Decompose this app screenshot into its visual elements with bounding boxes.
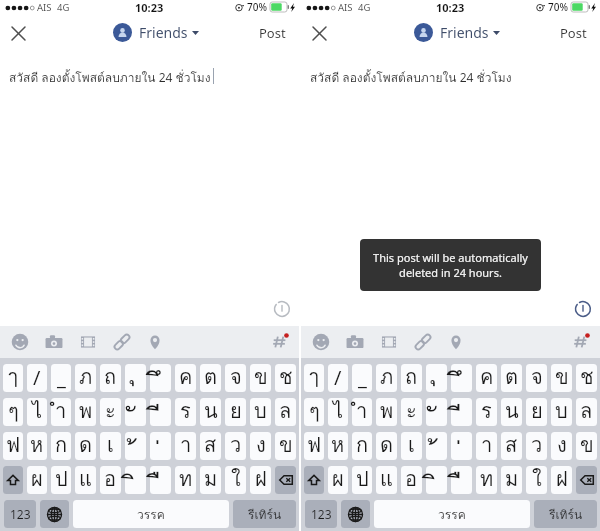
button[interactable]: [75, 364, 96, 392]
button[interactable]: [3, 364, 23, 392]
button[interactable]: [551, 466, 572, 494]
button[interactable]: [476, 466, 497, 494]
button[interactable]: [275, 398, 296, 426]
button[interactable]: [352, 364, 372, 392]
button[interactable]: [304, 364, 324, 392]
button[interactable]: [376, 398, 397, 426]
button[interactable]: [352, 466, 372, 494]
button[interactable]: [401, 466, 422, 494]
button[interactable]: [225, 432, 246, 460]
button[interactable]: Video: [380, 333, 398, 351]
button[interactable]: [200, 466, 221, 494]
button[interactable]: [3, 432, 23, 460]
button[interactable]: Backspace: [576, 466, 597, 494]
button[interactable]: [150, 398, 171, 426]
button[interactable]: Link: [414, 333, 432, 351]
button[interactable]: [51, 432, 71, 460]
button[interactable]: [328, 466, 348, 494]
button[interactable]: [125, 364, 146, 392]
button[interactable]: [225, 364, 246, 392]
button[interactable]: [401, 364, 422, 392]
button[interactable]: [376, 466, 397, 494]
button[interactable]: [250, 466, 271, 494]
button[interactable]: Video: [79, 333, 97, 351]
button[interactable]: [225, 398, 246, 426]
button[interactable]: [476, 398, 497, 426]
button[interactable]: Shift: [3, 466, 23, 494]
button[interactable]: Emoji: [312, 333, 330, 351]
button[interactable]: [75, 432, 96, 460]
button[interactable]: [304, 432, 324, 460]
button[interactable]: [501, 398, 522, 426]
button[interactable]: [401, 432, 422, 460]
button[interactable]: [426, 466, 447, 494]
button[interactable]: [376, 364, 397, 392]
button[interactable]: [328, 364, 348, 392]
button[interactable]: [476, 432, 497, 460]
button[interactable]: [551, 364, 572, 392]
button[interactable]: [501, 432, 522, 460]
button[interactable]: [175, 432, 196, 460]
button[interactable]: [125, 398, 146, 426]
button[interactable]: [150, 364, 171, 392]
button[interactable]: [526, 466, 547, 494]
button[interactable]: [250, 364, 271, 392]
button[interactable]: [125, 432, 146, 460]
button[interactable]: [3, 398, 23, 426]
button[interactable]: Post: [554, 20, 600, 46]
button[interactable]: [426, 432, 447, 460]
button[interactable]: Shift: [304, 466, 324, 494]
button[interactable]: [501, 466, 522, 494]
button[interactable]: [27, 398, 47, 426]
button[interactable]: Location: [147, 334, 163, 350]
button[interactable]: Hashtag: [271, 333, 289, 351]
button[interactable]: [125, 466, 146, 494]
button[interactable]: Hashtag: [572, 333, 590, 351]
button[interactable]: [352, 432, 372, 460]
button[interactable]: [100, 398, 121, 426]
button[interactable]: Photo: [346, 333, 364, 351]
button[interactable]: [75, 398, 96, 426]
button[interactable]: [51, 364, 71, 392]
button[interactable]: Photo: [45, 333, 63, 351]
button[interactable]: [451, 466, 472, 494]
button[interactable]: [576, 398, 597, 426]
button[interactable]: 123: [4, 500, 36, 528]
button[interactable]: [175, 466, 196, 494]
button[interactable]: [426, 398, 447, 426]
button[interactable]: Close: [306, 20, 332, 46]
button[interactable]: [200, 398, 221, 426]
button[interactable]: Post: [253, 20, 299, 46]
button[interactable]: [551, 398, 572, 426]
button[interactable]: Next keyboard: [40, 500, 69, 528]
button[interactable]: [576, 364, 597, 392]
button[interactable]: [200, 364, 221, 392]
button[interactable]: [328, 432, 348, 460]
button[interactable]: [175, 398, 196, 426]
button[interactable]: [376, 432, 397, 460]
button[interactable]: Friends: [414, 23, 500, 42]
button[interactable]: วรรค: [73, 500, 229, 528]
button[interactable]: [451, 398, 472, 426]
button[interactable]: [275, 432, 296, 460]
button[interactable]: [576, 432, 597, 460]
button[interactable]: [75, 466, 96, 494]
button[interactable]: [451, 364, 472, 392]
button[interactable]: Friends: [113, 23, 199, 42]
button[interactable]: Timer: [574, 300, 592, 318]
button[interactable]: [100, 364, 121, 392]
button[interactable]: [27, 364, 47, 392]
button[interactable]: [27, 432, 47, 460]
button[interactable]: [551, 432, 572, 460]
button[interactable]: [401, 398, 422, 426]
button[interactable]: Emoji: [11, 333, 29, 351]
button[interactable]: รีเทิร์น: [534, 500, 597, 528]
button[interactable]: [526, 432, 547, 460]
button[interactable]: Timer: [273, 300, 291, 318]
button[interactable]: [275, 364, 296, 392]
button[interactable]: [304, 398, 324, 426]
button[interactable]: [51, 466, 71, 494]
button[interactable]: รีเทิร์น: [233, 500, 296, 528]
button[interactable]: Link: [113, 333, 131, 351]
button[interactable]: [526, 398, 547, 426]
